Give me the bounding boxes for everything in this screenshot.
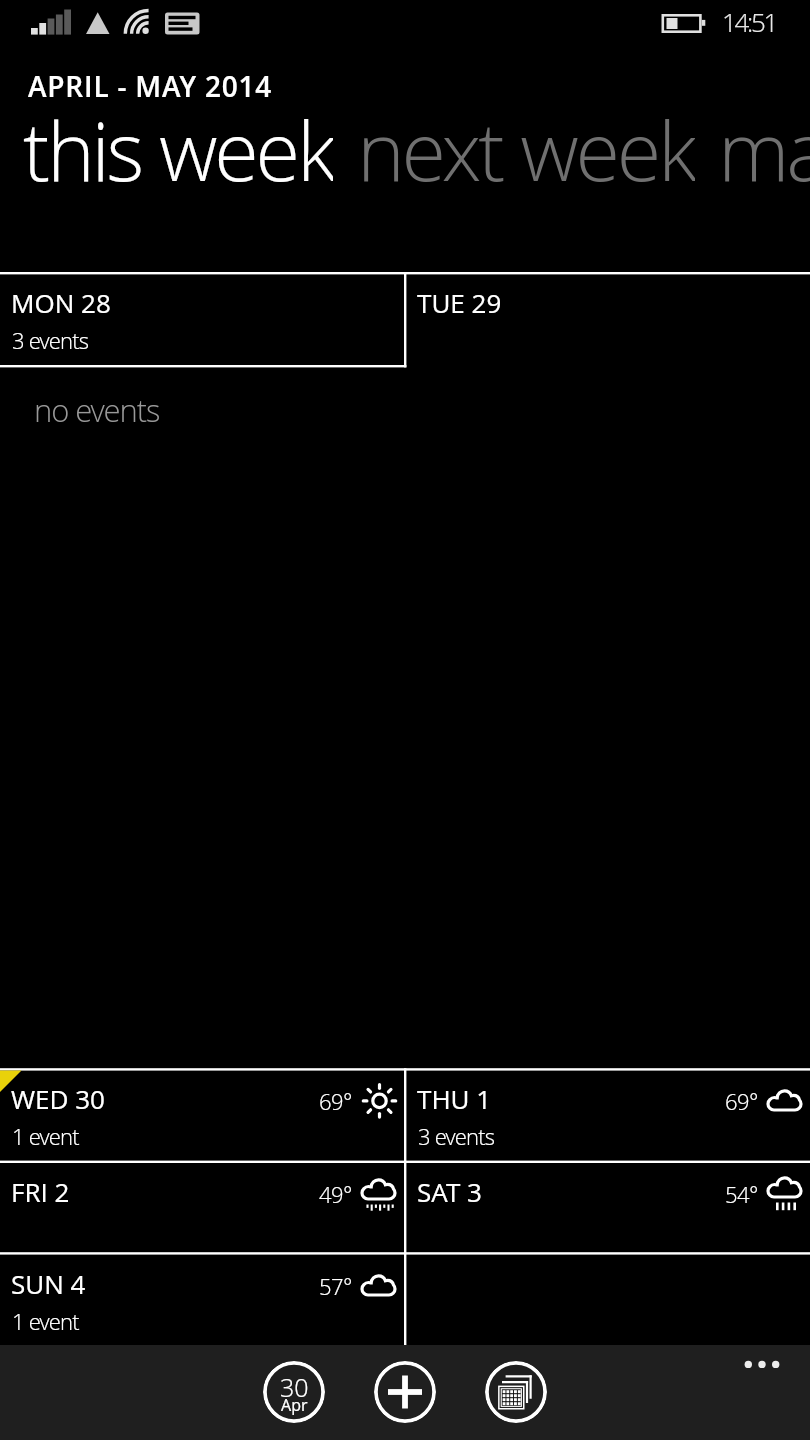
- button[interactable]: New event: [374, 1361, 436, 1423]
- staticText: 69°: [319, 1086, 352, 1116]
- staticText: no events: [34, 389, 160, 431]
- staticText: WED 30: [11, 1081, 105, 1116]
- button[interactable]: MON 28: [0, 274, 404, 365]
- staticText: 3 events: [418, 1121, 495, 1151]
- button[interactable]: SAT 3: [406, 1163, 810, 1253]
- staticText: 14:51: [722, 4, 777, 39]
- staticText: 1 event: [12, 1121, 79, 1151]
- staticText: APRIL - MAY 2014: [28, 67, 273, 105]
- button[interactable]: SUN 4: [0, 1255, 404, 1345]
- button[interactable]: Today, 30 April: [263, 1361, 325, 1423]
- staticText: 69°: [725, 1086, 758, 1116]
- staticText: MON 28: [11, 285, 111, 320]
- button[interactable]: ma: [718, 94, 810, 194]
- staticText: TUE 29: [417, 285, 502, 320]
- staticText: 57°: [319, 1271, 352, 1301]
- staticText: FRI 2: [11, 1174, 70, 1209]
- staticText: THU 1: [417, 1081, 492, 1116]
- button[interactable]: this week: [23, 94, 333, 194]
- staticText: 54°: [725, 1179, 758, 1209]
- staticText: Apr: [281, 1394, 308, 1416]
- staticText: 30: [280, 1370, 309, 1404]
- staticText: SAT 3: [417, 1174, 482, 1209]
- button[interactable]: THU 1: [406, 1070, 810, 1161]
- button[interactable]: next week: [357, 94, 695, 194]
- button[interactable]: WED 30: [0, 1070, 404, 1161]
- button[interactable]: FRI 2: [0, 1163, 404, 1253]
- staticText: 3 events: [12, 325, 89, 355]
- staticText: 49°: [319, 1179, 352, 1209]
- button[interactable]: More options: [730, 1345, 800, 1385]
- staticText: 1 event: [12, 1306, 79, 1336]
- button[interactable]: Month view: [485, 1361, 547, 1423]
- staticText: SUN 4: [11, 1266, 86, 1301]
- button[interactable]: TUE 29: [406, 274, 810, 365]
